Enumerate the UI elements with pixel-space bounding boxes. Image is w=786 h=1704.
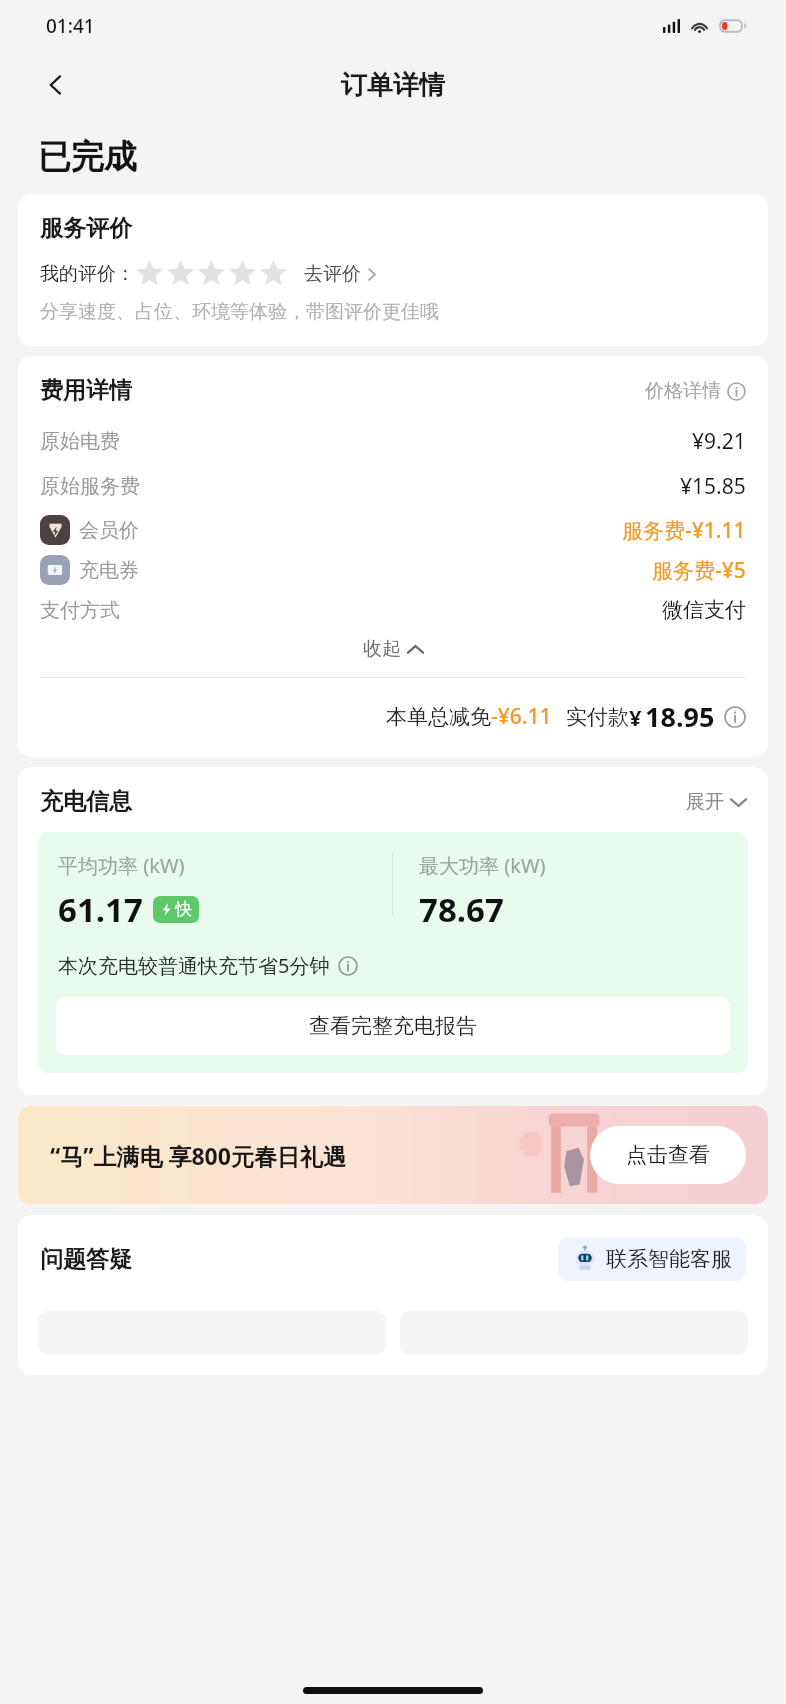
staticText: 服务评价 <box>40 214 132 243</box>
staticText: 服务费-¥1.11 <box>622 516 746 545</box>
staticText: “马”上满电 享800元春日礼遇 <box>50 1140 346 1171</box>
staticText: 快 <box>175 899 192 920</box>
button[interactable]: 查看完整充电报告 <box>56 997 730 1055</box>
staticText: 查看完整充电报告 <box>309 1013 477 1039</box>
staticText: 充电券 <box>79 558 139 583</box>
button[interactable]: 去评价 <box>304 262 377 286</box>
staticText: 原始电费 <box>40 429 120 454</box>
staticText: 我的评价： <box>40 262 135 286</box>
button[interactable]: 联系智能客服 <box>558 1237 746 1281</box>
staticText: 问题答疑 <box>40 1245 132 1274</box>
staticText: 最大功率 (kW) <box>419 852 546 879</box>
staticText: 联系智能客服 <box>606 1246 732 1272</box>
button[interactable]: 展开 <box>686 790 746 814</box>
button[interactable]: 点击查看 <box>590 1126 746 1184</box>
staticText: 支付方式 <box>40 598 120 623</box>
staticText: 充电信息 <box>40 787 132 816</box>
staticText: 61.17 <box>58 887 143 932</box>
staticText: 18.95 <box>645 698 715 735</box>
staticText: 78.67 <box>419 887 504 932</box>
staticText: ¥9.21 <box>692 427 746 456</box>
staticText: 已完成 <box>38 136 137 178</box>
staticText: 本次充电较普通快充节省5分钟 <box>58 952 330 979</box>
staticText: 原始服务费 <box>40 474 140 499</box>
staticText: 微信支付 <box>662 597 746 623</box>
staticText: 01:41 <box>46 13 95 39</box>
staticText: 点击查看 <box>626 1142 710 1168</box>
staticText: 本单总减免 <box>386 704 491 730</box>
staticText: 费用详情 <box>40 376 132 405</box>
staticText: 订单详情 <box>341 69 445 102</box>
staticText: 实付款 <box>566 704 629 730</box>
button[interactable]: Back <box>34 63 78 107</box>
button[interactable]: 价格详情 <box>645 379 746 403</box>
staticText: 收起 <box>363 637 401 661</box>
staticText: -¥6.11 <box>491 702 552 731</box>
staticText: 会员价 <box>79 518 139 543</box>
staticText: 分享速度、占位、环境等体验，带图评价更佳哦 <box>40 300 439 324</box>
staticText: 服务费-¥5 <box>652 556 746 585</box>
button[interactable]: “马”上满电 享800元春日礼遇 <box>18 1106 768 1204</box>
staticText: 展开 <box>686 790 724 814</box>
staticText: ¥15.85 <box>680 472 746 501</box>
staticText: 平均功率 (kW) <box>58 852 185 879</box>
button[interactable]: 收起 <box>18 637 768 661</box>
staticText: ¥ <box>629 702 642 732</box>
staticText: 去评价 <box>304 262 361 286</box>
staticText: 价格详情 <box>645 379 721 403</box>
